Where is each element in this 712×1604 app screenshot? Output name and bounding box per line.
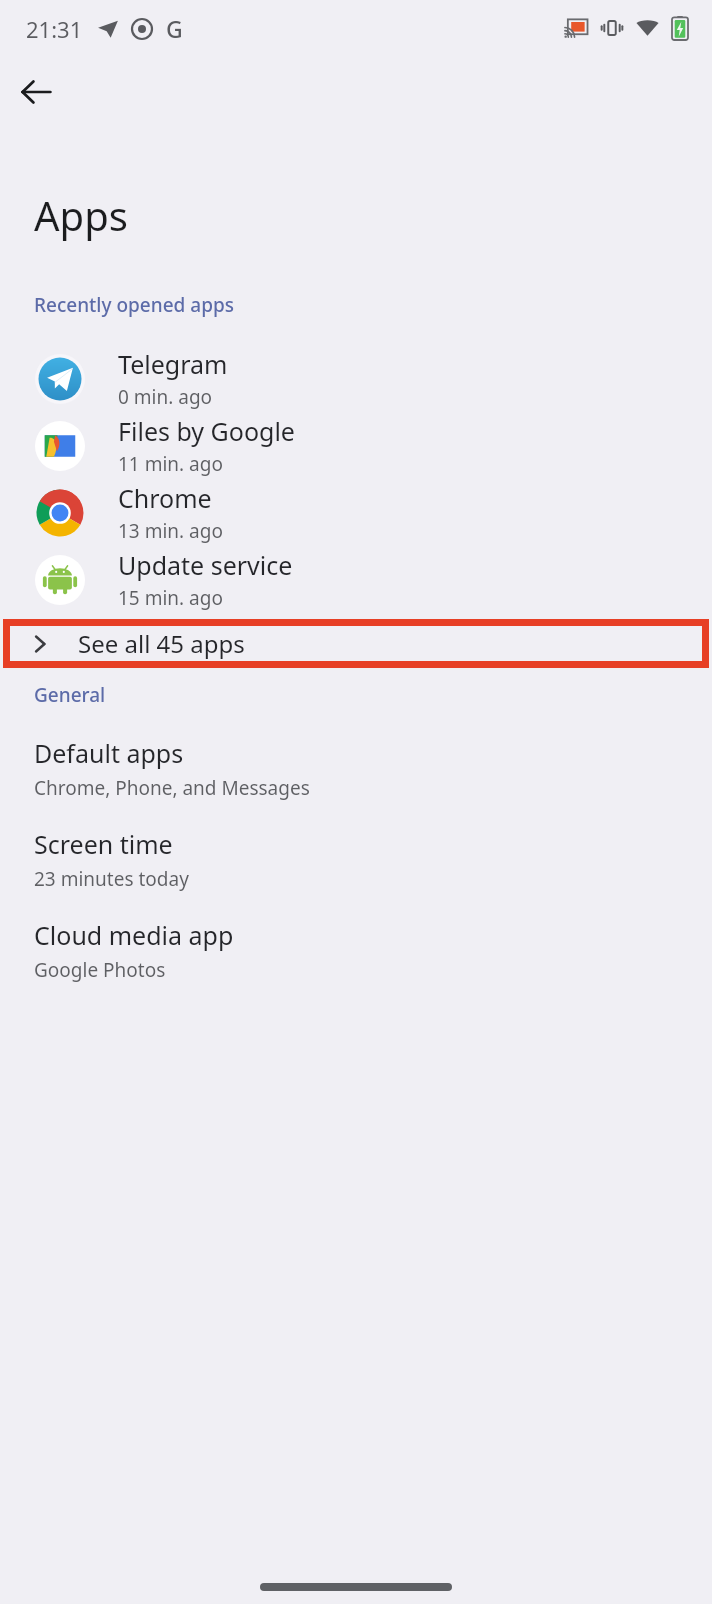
staticText: Chrome	[118, 481, 212, 515]
staticText: See all 45 apps	[78, 627, 245, 660]
button[interactable]: Chrome	[0, 479, 712, 546]
staticText: 0 min. ago	[118, 384, 213, 410]
button[interactable]: Back	[8, 64, 64, 120]
button[interactable]: Telegram	[0, 345, 712, 412]
staticText: Cloud media app	[34, 918, 234, 952]
staticText: Chrome, Phone, and Messages	[34, 775, 310, 801]
staticText: G	[166, 13, 183, 44]
staticText: 23 minutes today	[34, 866, 189, 892]
staticText: 11 min. ago	[118, 451, 223, 477]
staticText: Screen time	[34, 827, 173, 861]
button[interactable]: Default apps	[0, 736, 712, 801]
button[interactable]: Files by Google	[0, 412, 712, 479]
staticText: Update service	[118, 548, 293, 582]
staticText: General	[34, 682, 106, 708]
button[interactable]: Cloud media app	[0, 918, 712, 983]
staticText: 15 min. ago	[118, 585, 223, 611]
staticText: 21:31	[26, 14, 83, 44]
staticText: Telegram	[118, 347, 228, 381]
button[interactable]: Screen time	[0, 827, 712, 892]
staticText: Recently opened apps	[34, 292, 234, 318]
staticText: Google Photos	[34, 957, 166, 983]
staticText: 13 min. ago	[118, 518, 223, 544]
button[interactable]: See all 45 apps	[10, 626, 702, 661]
staticText: Apps	[34, 188, 128, 242]
staticText: Files by Google	[118, 414, 295, 448]
staticText: Default apps	[34, 736, 184, 770]
button[interactable]: Update service	[0, 546, 712, 613]
